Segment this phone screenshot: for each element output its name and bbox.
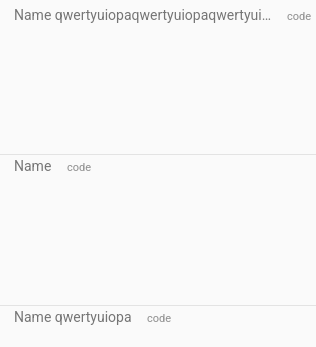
staticText: code [67,161,92,174]
staticText: code [147,312,172,325]
staticText: code [287,10,312,23]
staticText: Name qwertyuiopaqwertyuiopaqwertyuiopaqw… [14,7,272,23]
staticText: Name qwertyuiopa [14,309,132,325]
button[interactable]: Name qwertyuiopaqwertyuiopaqwertyuiopaqw… [0,0,316,154]
staticText: Name [14,158,52,174]
button[interactable]: Name qwertyuiopa [0,306,316,347]
button[interactable]: Name [0,155,316,305]
